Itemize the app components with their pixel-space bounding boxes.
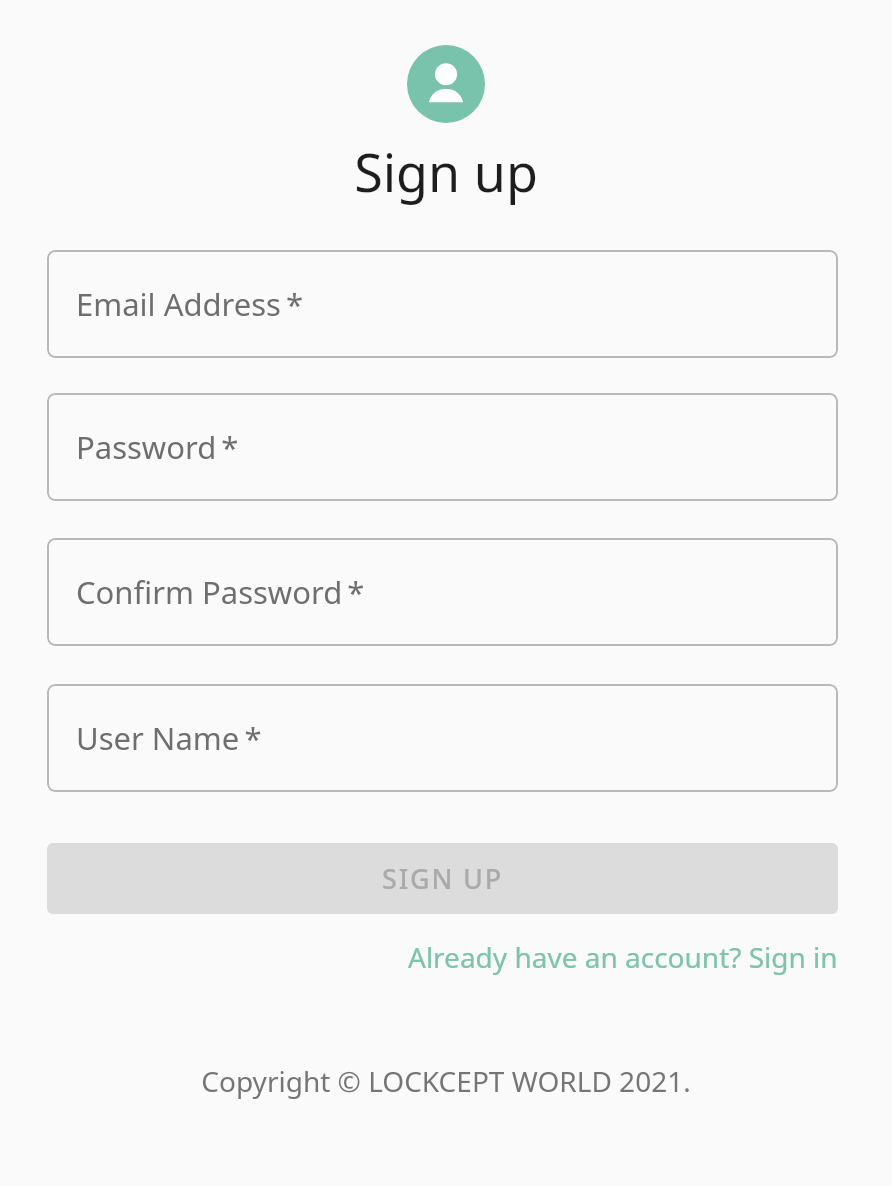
staticText: SIGN UP [382,860,504,897]
staticText: Email Address * [76,283,304,325]
staticText: Sign up [354,136,538,207]
button[interactable]: Email Address * [47,250,838,358]
button[interactable]: SIGN UP [47,843,838,914]
staticText: Confirm Password * [76,571,365,613]
staticText: Password * [76,426,239,468]
button[interactable]: Password * [47,393,838,501]
staticText: Already have an account? Sign in [408,938,838,976]
button[interactable]: Confirm Password * [47,538,838,646]
button[interactable]: User Name * [47,684,838,792]
staticText: Copyright © LOCKCEPT WORLD 2021. [201,1062,691,1100]
button[interactable]: Already have an account? Sign in [408,938,838,976]
other: Account avatar [407,45,485,123]
staticText: User Name * [76,717,262,759]
